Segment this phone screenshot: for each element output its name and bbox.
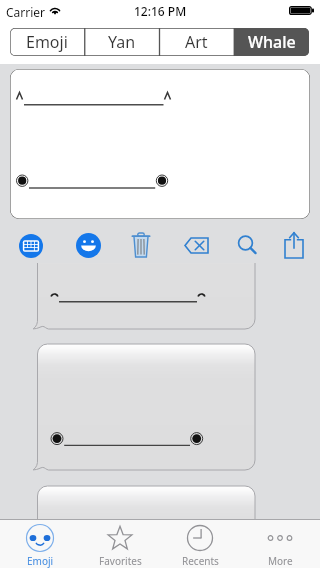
staticText: Recents	[182, 554, 219, 568]
button[interactable]	[36, 344, 255, 476]
staticText: Favorites	[99, 554, 142, 568]
button[interactable]: Delete	[132, 232, 150, 258]
button[interactable]: Share	[284, 231, 304, 259]
staticText: Art	[185, 31, 208, 53]
button[interactable]: Art	[159, 28, 234, 56]
button[interactable]: Whale	[234, 28, 309, 56]
staticText: Whale	[248, 31, 296, 53]
button[interactable]	[10, 69, 310, 219]
staticText: 12:16 PM	[134, 3, 187, 19]
button[interactable]: Recents	[160, 520, 240, 568]
button[interactable]: Keyboard	[19, 234, 43, 258]
button[interactable]	[36, 486, 255, 568]
button[interactable]: Yan	[84, 28, 159, 56]
button[interactable]: More	[240, 520, 320, 568]
button[interactable]	[36, 240, 255, 335]
button[interactable]: Emoji	[10, 28, 84, 56]
button[interactable]: Emoji	[0, 520, 80, 568]
button[interactable]: Emoji	[76, 233, 101, 258]
button[interactable]: Favorites	[80, 520, 160, 568]
staticText: Yan	[108, 31, 136, 53]
button[interactable]: Search	[236, 236, 258, 258]
button[interactable]: Backspace	[184, 237, 209, 254]
staticText: Carrier	[6, 4, 46, 20]
staticText: Emoji	[26, 31, 68, 53]
staticText: Emoji	[27, 554, 54, 568]
staticText: More	[268, 554, 293, 568]
